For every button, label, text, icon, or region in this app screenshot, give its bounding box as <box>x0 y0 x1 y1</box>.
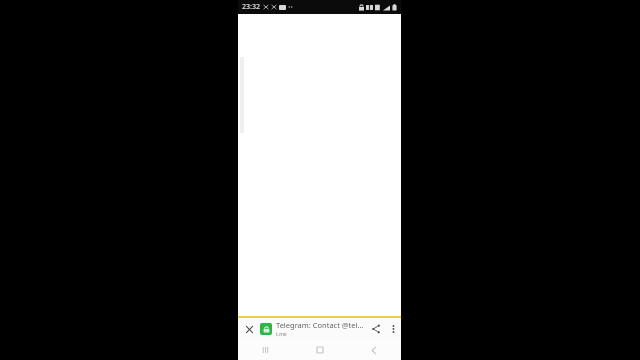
staticText: Telegram: Contact @tele... <box>276 320 365 330</box>
button[interactable]: Site information <box>260 323 272 335</box>
button[interactable]: Share <box>367 318 385 340</box>
button[interactable]: Back <box>347 340 401 360</box>
staticText: 23:32 <box>242 2 260 12</box>
button[interactable]: Recents <box>238 340 293 360</box>
staticText: t.me <box>276 331 287 338</box>
button[interactable]: More options <box>385 318 401 340</box>
button[interactable]: Close <box>238 318 260 340</box>
button[interactable]: Home <box>293 340 347 360</box>
button[interactable]: Telegram: Contact @tele... <box>276 318 365 340</box>
